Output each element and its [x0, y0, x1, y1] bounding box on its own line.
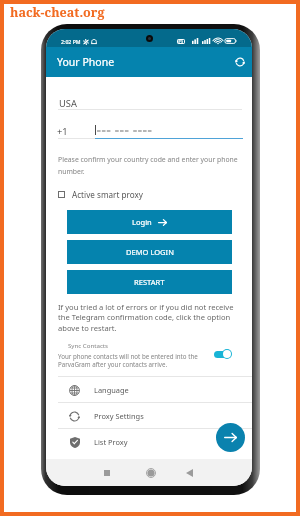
button[interactable] [214, 347, 236, 361]
button[interactable]: Active smart proxy [58, 188, 143, 200]
button[interactable]: List Proxy [46, 429, 252, 455]
staticText: If you tried a lot of errors or if you d… [58, 302, 250, 334]
button[interactable]: DEMO LOGIN [67, 240, 232, 264]
staticText: 2:02 PM [61, 38, 81, 45]
button[interactable]: RESTART [67, 270, 232, 294]
staticText: Sync Contacts [68, 341, 109, 349]
staticText: Proxy Settings [94, 411, 144, 421]
staticText: Please confirm your country code and ent… [58, 155, 252, 176]
staticText: hack-cheat.org [10, 4, 105, 21]
staticText: Login [132, 217, 152, 227]
staticText: RESTART [134, 277, 165, 287]
staticText: Active smart proxy [72, 189, 143, 200]
staticText: USA [59, 97, 77, 110]
button[interactable]: Proxy Settings [46, 403, 252, 429]
button[interactable]: Next [216, 423, 245, 452]
button[interactable]: Login [67, 210, 232, 234]
staticText: +1 [57, 125, 68, 138]
button[interactable]: Home [144, 466, 157, 479]
button[interactable]: Language [46, 377, 252, 403]
staticText: DEMO LOGIN [126, 247, 174, 257]
button[interactable]: Refresh [231, 53, 249, 71]
staticText: Your phone contacts will not be entered … [58, 352, 208, 369]
staticText: VPN [178, 40, 184, 44]
staticText: Language [94, 385, 129, 395]
button[interactable]: Recents [101, 467, 113, 479]
staticText: List Proxy [94, 437, 128, 447]
staticText: Your Phone [57, 55, 115, 69]
button[interactable]: Back [183, 467, 195, 479]
